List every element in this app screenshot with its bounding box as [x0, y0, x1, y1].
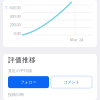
staticText: 0.00 [13, 31, 20, 36]
staticText: フォロー [20, 80, 36, 84]
staticText: T [5, 5, 7, 10]
staticText: 400.00 [9, 14, 20, 19]
button[interactable]: コメント [51, 76, 92, 88]
staticText: 評価推移 [8, 56, 36, 64]
staticText: 直近の平均値 [8, 68, 32, 73]
staticText: コメント [63, 80, 79, 84]
staticText: 600.00 [9, 5, 20, 10]
button[interactable]: フォロー [8, 76, 49, 88]
staticText: Mar 24 [70, 37, 83, 42]
staticText: 投稿日時 [8, 92, 24, 97]
staticText: 200.00 [9, 22, 20, 27]
